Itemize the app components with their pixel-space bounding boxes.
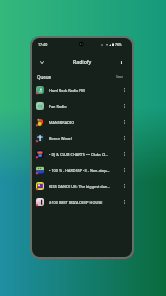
button[interactable]: Save [115,74,124,80]
button[interactable]: Bonce Wavel [32,130,132,146]
button[interactable]: Track options [120,182,128,190]
button[interactable]: Fan Radio [32,98,132,114]
staticText: 76% [115,42,122,46]
staticText: Save [116,75,123,79]
staticText: Queue [37,74,52,80]
staticText: MANSBRADIO [49,120,120,125]
staticText: • DJ & CLUB CHARTS ••• Clubs Cl... [49,152,120,157]
button[interactable]: More options [115,56,127,68]
button[interactable]: Track options [120,166,128,174]
button[interactable]: KISS DANCE UK: The biggest dan... [32,178,132,194]
button[interactable]: • DJ & CLUB CHARTS ••• Clubs Cl... [32,146,132,162]
staticText: Fan Radio [49,104,120,109]
staticText: #100 BEST IBIZA DEEP HOUSE [49,200,120,205]
button[interactable]: Track options [120,198,128,206]
button[interactable]: Track options [120,134,128,142]
staticText: • 100 % - HARDSSP •3 - Non-stop... [49,168,120,173]
button[interactable]: Track options [120,86,128,94]
button[interactable]: #100 BEST IBIZA DEEP HOUSE [32,194,132,210]
button[interactable]: Track options [120,118,128,126]
staticText: 17:40 [38,42,48,47]
staticText: KISS DANCE UK: The biggest dan... [49,184,120,189]
button[interactable]: Track options [120,150,128,158]
button[interactable]: MANSBRADIO [32,114,132,130]
button[interactable]: Hard Rock Radio FM [32,82,132,98]
staticText: Radiofy [73,59,92,66]
button[interactable]: Track options [120,102,128,110]
button[interactable]: • 100 % - HARDSSP •3 - Non-stop... [32,162,132,178]
staticText: Hard Rock Radio FM [49,88,120,93]
button[interactable]: Collapse [36,56,48,68]
staticText: Bonce Wavel [49,136,120,141]
